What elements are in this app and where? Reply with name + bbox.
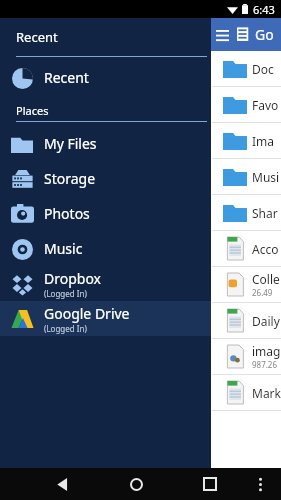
button[interactable]: Google Drive — [0, 301, 211, 336]
button[interactable]: Collection.zip — [218, 267, 281, 302]
button[interactable]: More options — [245, 469, 275, 499]
staticText: Favorites — [252, 97, 281, 113]
button[interactable]: Photos — [0, 196, 211, 231]
button[interactable]: Back — [45, 468, 79, 500]
staticText: Documents — [252, 61, 281, 77]
staticText: Images — [252, 133, 281, 149]
button[interactable]: Storage — [0, 161, 211, 196]
staticText: 987.26 KB — [252, 359, 281, 370]
button[interactable]: Daily.xls — [218, 303, 281, 338]
button[interactable]: Open navigation drawer — [212, 25, 232, 45]
staticText: Accounts.xls — [252, 241, 281, 257]
button[interactable]: Favorites — [218, 87, 281, 122]
staticText: (Logged In) — [44, 323, 87, 334]
staticText: My Files — [44, 134, 97, 153]
staticText: 26.49 MB — [252, 287, 281, 298]
staticText: Markets.xls — [252, 385, 281, 401]
button[interactable]: Home — [119, 468, 153, 500]
button[interactable]: Dropbox — [0, 266, 211, 301]
button[interactable]: Music — [0, 231, 211, 266]
button[interactable]: Markets.xls — [218, 375, 281, 410]
button[interactable]: Shared — [218, 195, 281, 230]
staticText: Recent — [44, 68, 89, 87]
staticText: Storage — [44, 169, 96, 188]
button[interactable]: Documents — [218, 51, 281, 86]
button[interactable]: Recent apps — [193, 468, 227, 500]
staticText: Google Drive — [255, 25, 281, 44]
staticText: Dropbox — [44, 269, 102, 288]
staticText: Shared — [252, 205, 281, 221]
staticText: Recent — [16, 28, 58, 46]
staticText: 6:43 — [253, 2, 275, 17]
staticText: Music — [44, 239, 83, 258]
staticText: Google Drive — [44, 304, 130, 323]
staticText: (Logged In) — [44, 288, 87, 299]
button[interactable]: image01.png — [218, 339, 281, 374]
staticText: Places — [16, 103, 49, 118]
button[interactable]: Recent — [0, 60, 211, 95]
button[interactable]: Accounts.xls — [218, 231, 281, 266]
button[interactable]: My Files — [0, 126, 211, 161]
staticText: image01.png — [252, 343, 281, 359]
staticText: Daily.xls — [252, 313, 281, 329]
button[interactable]: Music — [218, 159, 281, 194]
button[interactable]: Images — [218, 123, 281, 158]
staticText: Photos — [44, 204, 90, 223]
staticText: Music — [252, 169, 281, 185]
staticText: Collection.zip — [252, 271, 281, 287]
